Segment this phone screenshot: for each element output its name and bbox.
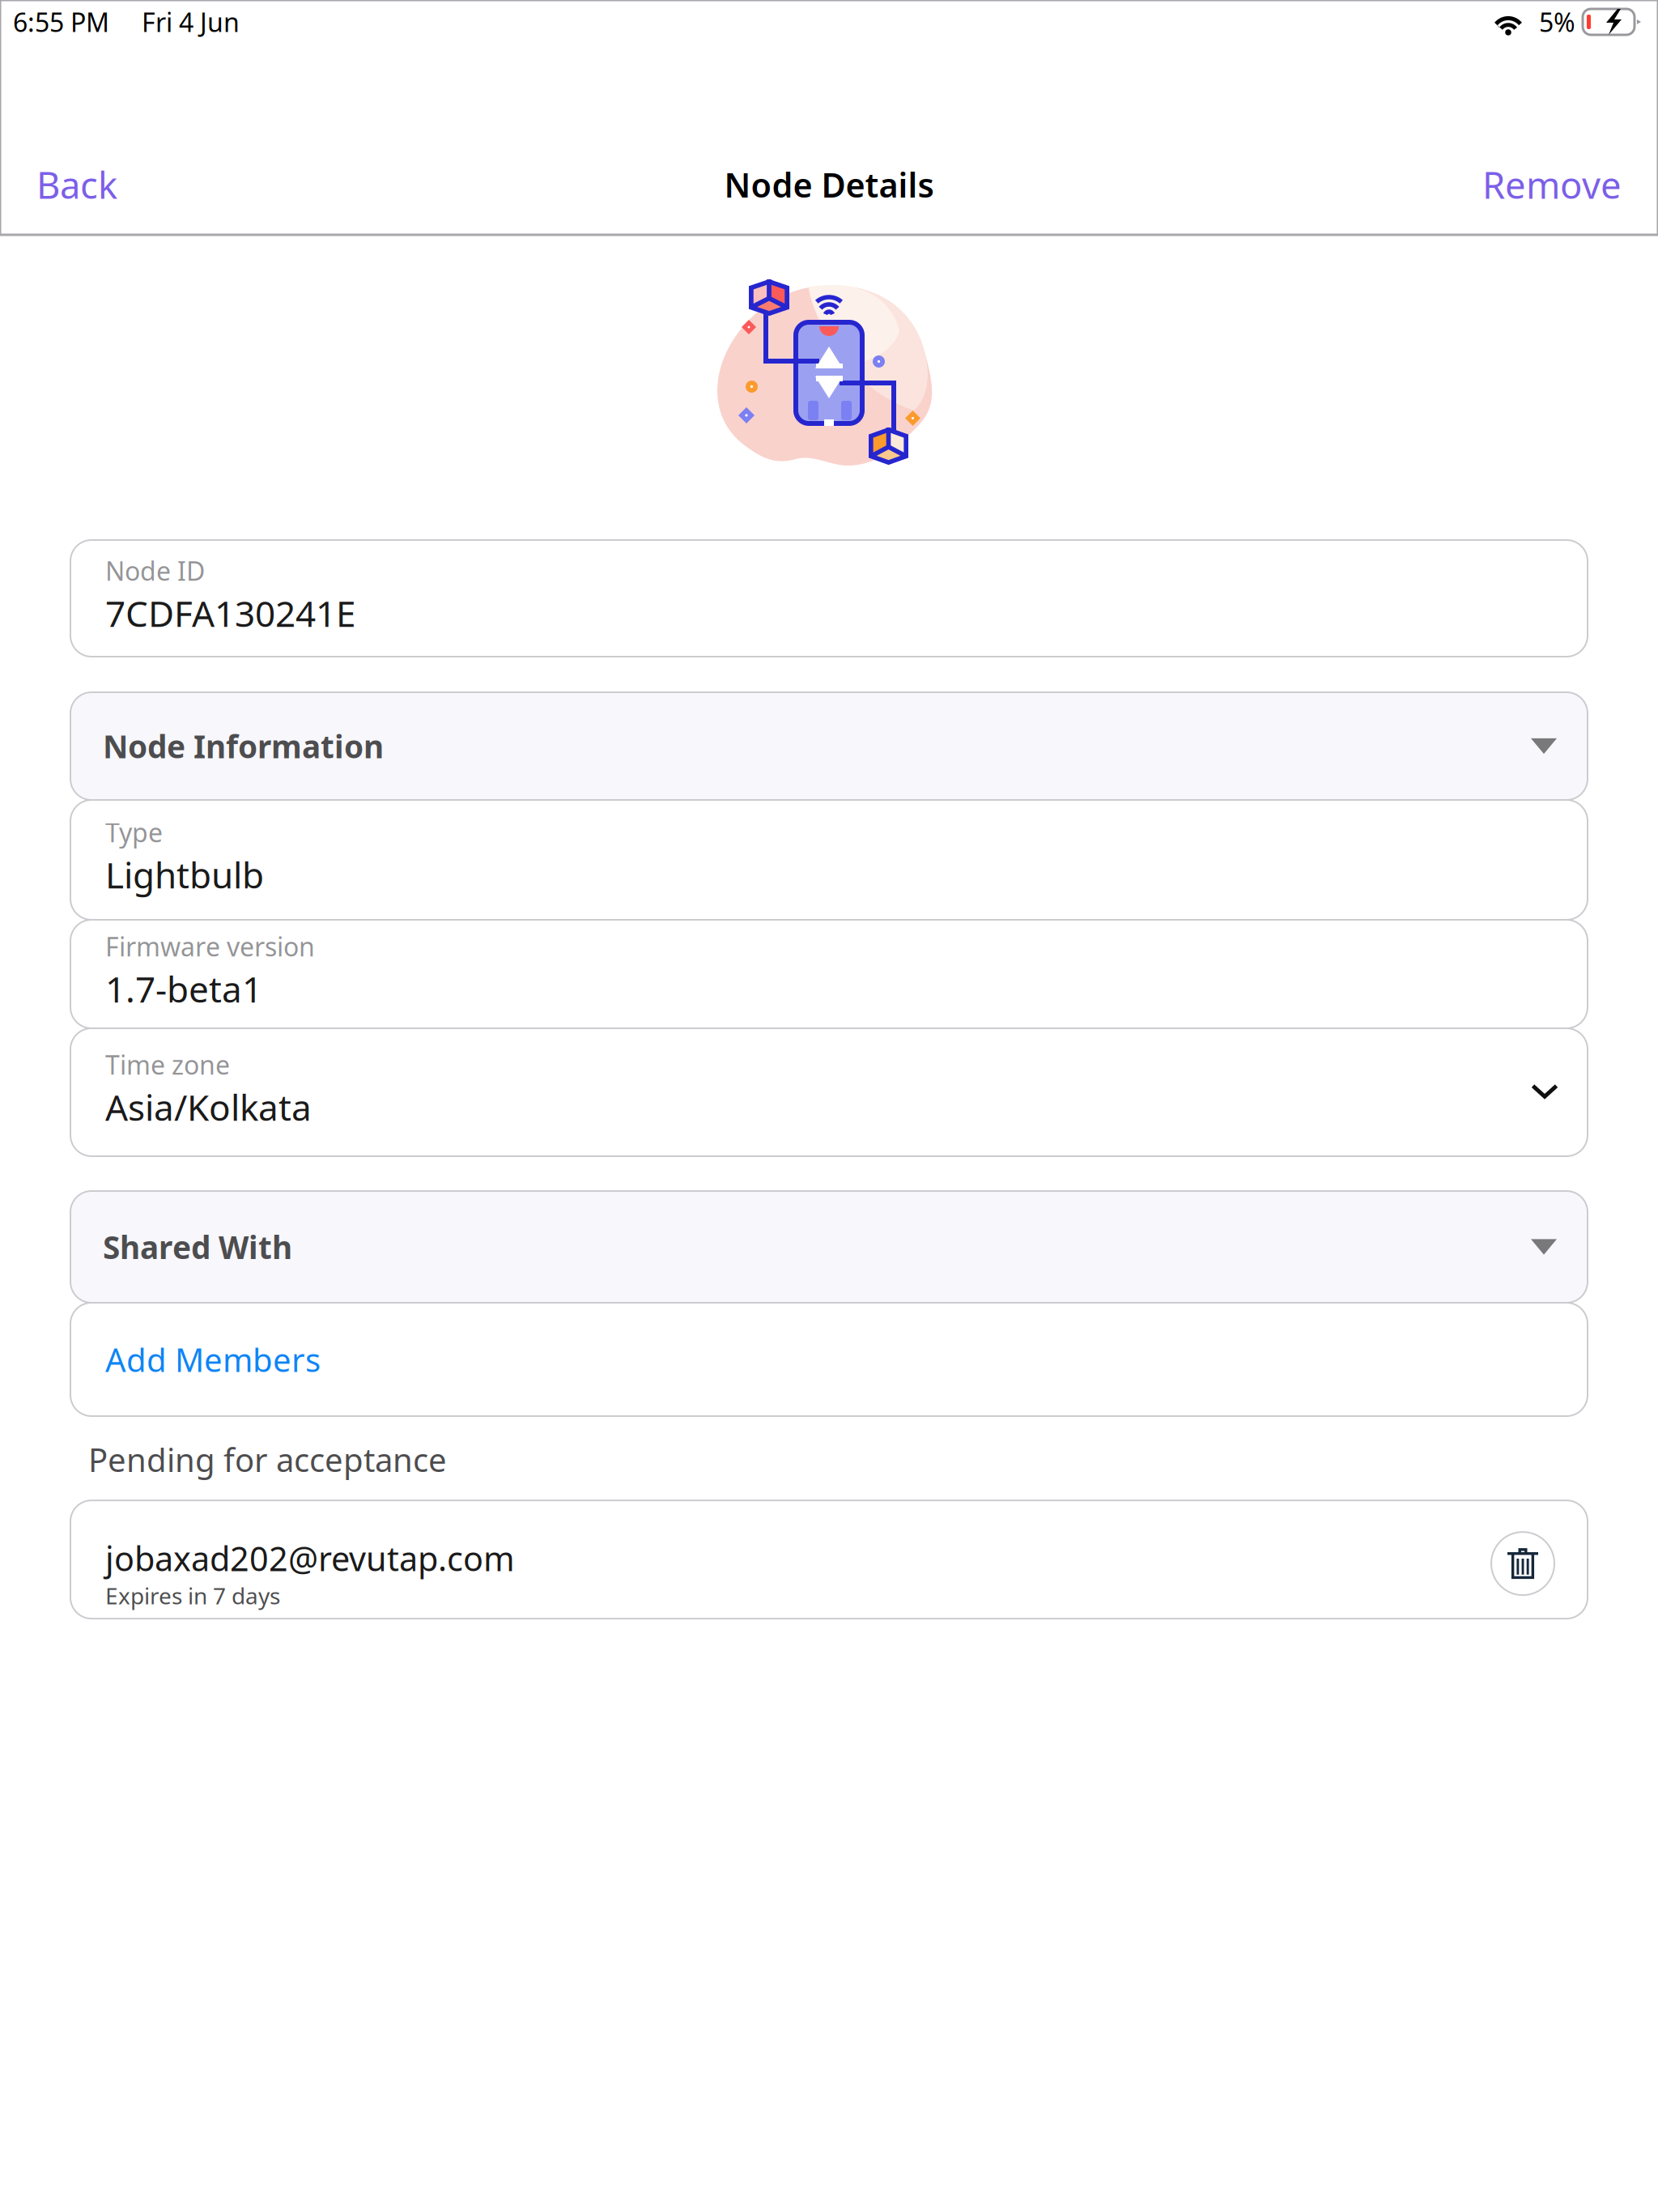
button[interactable]: Delete invitation — [1491, 1532, 1554, 1595]
staticText: Lightbulb — [105, 851, 264, 898]
staticText: Remove — [1482, 160, 1622, 209]
staticText: Back — [36, 160, 117, 209]
staticText: Add Members — [105, 1338, 321, 1381]
staticText: Type — [105, 815, 163, 849]
staticText: Expires in 7 days — [105, 1580, 280, 1611]
staticText: Node ID — [105, 553, 205, 588]
button[interactable]: Shared With — [70, 1191, 1588, 1303]
button[interactable]: Node Information — [70, 692, 1588, 800]
staticText: 5% — [1526, 5, 1582, 39]
staticText: Node Details — [724, 162, 934, 207]
button[interactable]: Add Members — [70, 1303, 1588, 1416]
staticText: Asia/Kolkata — [105, 1083, 312, 1131]
staticText: jobaxad202@revutap.com — [105, 1536, 515, 1580]
staticText: Fri 4 Jun — [109, 5, 240, 39]
button[interactable]: Time zone — [70, 1028, 1588, 1156]
button[interactable]: Remove — [1463, 154, 1622, 215]
staticText: Pending for acceptance — [88, 1438, 447, 1481]
staticText: 1.7-beta1 — [105, 965, 262, 1012]
staticText: 7CDFA130241E — [105, 589, 355, 637]
staticText: 6:55 PM — [13, 5, 109, 39]
staticText: Node Information — [103, 725, 384, 767]
staticText: Shared With — [103, 1226, 292, 1268]
button[interactable]: Back — [36, 154, 137, 215]
staticText: Time zone — [105, 1047, 230, 1082]
staticText: Firmware version — [105, 929, 315, 963]
